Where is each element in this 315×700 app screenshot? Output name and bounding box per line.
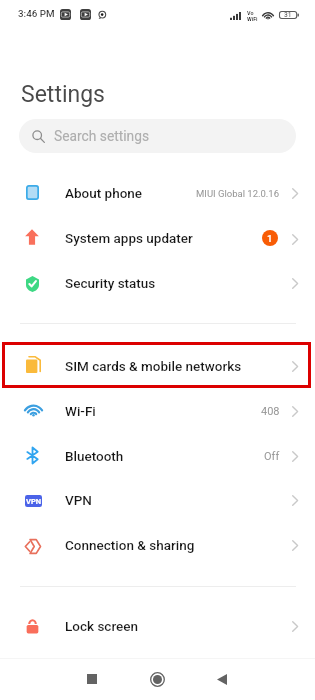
button[interactable]: System apps updater (0, 216, 315, 261)
button[interactable]: Recent apps (70, 658, 114, 700)
staticText: MIUI Global 12.0.16 (196, 188, 280, 199)
staticText: Connection & sharing (65, 537, 195, 553)
button[interactable]: Lock screen (0, 604, 315, 649)
staticText: Bluetooth (65, 448, 124, 464)
staticText: SIM cards & mobile networks (65, 358, 242, 374)
staticText: 1 (267, 233, 273, 244)
staticText: Search settings (54, 128, 150, 144)
button[interactable]: Connection & sharing (0, 523, 315, 568)
staticText: Vo (247, 10, 254, 16)
staticText: Off (264, 450, 280, 463)
staticText: About phone (65, 185, 143, 201)
button[interactable]: Bluetooth (0, 434, 315, 479)
button[interactable]: Wi-Fi (0, 389, 315, 434)
button[interactable]: Security status (0, 261, 315, 306)
staticText: Settings (21, 81, 105, 108)
button[interactable]: Search settings (19, 119, 296, 153)
staticText: Lock screen (65, 618, 139, 634)
staticText: 31 (284, 11, 292, 19)
staticText: 3:46 PM (18, 8, 55, 19)
staticText: Security status (65, 275, 156, 291)
staticText: WiFi (247, 16, 258, 22)
button[interactable]: VPN (0, 478, 315, 523)
button[interactable]: Back (200, 658, 244, 700)
staticText: System apps updater (65, 230, 193, 246)
staticText: Wi-Fi (65, 403, 96, 419)
button[interactable]: SIM cards & mobile networks (0, 344, 315, 389)
button[interactable]: About phone (0, 171, 315, 216)
staticText: VPN (26, 497, 42, 506)
staticText: 408 (261, 405, 280, 418)
button[interactable]: Home (135, 658, 179, 700)
staticText: VPN (65, 492, 92, 508)
